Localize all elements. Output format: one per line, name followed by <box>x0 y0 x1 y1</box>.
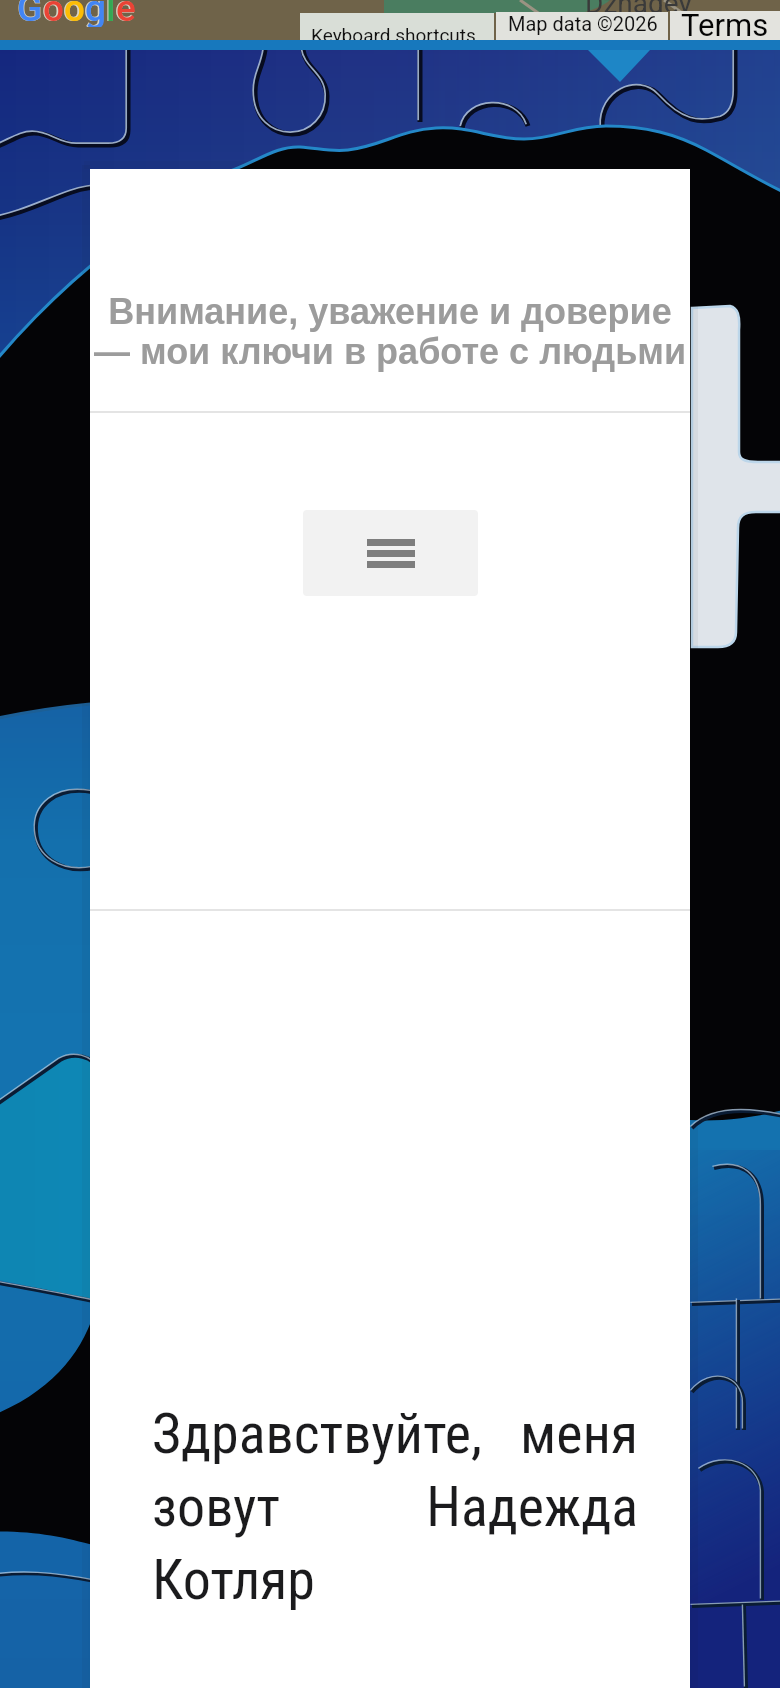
staticText: Dzhadey <box>585 0 692 20</box>
staticText: Keyboard shortcuts <box>311 24 476 40</box>
button[interactable]: Open menu <box>303 510 478 596</box>
staticText: o <box>64 0 85 27</box>
staticText: Google <box>17 0 135 27</box>
staticText: Внимание, уважение и доверие — мои ключи… <box>90 291 690 372</box>
staticText: g <box>85 0 106 27</box>
staticText: G <box>17 0 43 27</box>
staticText: e <box>116 0 136 27</box>
staticText: l <box>106 0 116 27</box>
staticText: Map data ©2026 <box>508 12 658 35</box>
staticText: o <box>43 0 64 27</box>
staticText: Здравствуйте, меня зовут Надежда Котляр <box>152 1401 638 1612</box>
staticText: Terms <box>681 7 769 40</box>
